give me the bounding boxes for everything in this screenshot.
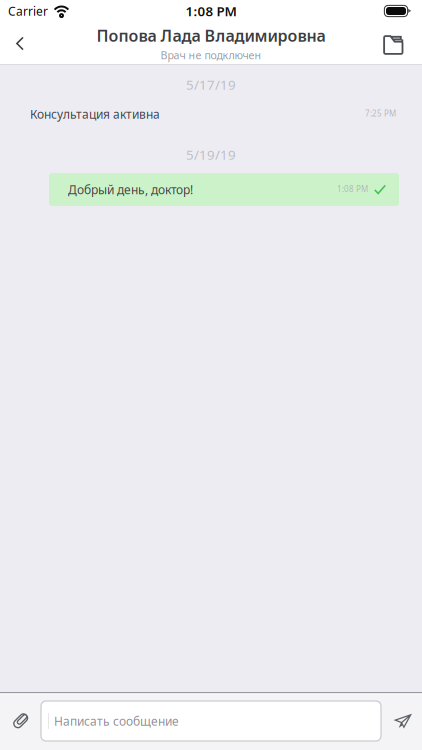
- button[interactable]: Back: [0, 22, 40, 65]
- staticText: 1:08 PM: [337, 184, 368, 194]
- staticText: 1:08 PM: [185, 2, 236, 20]
- button[interactable]: Attach file: [1, 692, 41, 750]
- staticText: Написать сообщение: [54, 713, 179, 729]
- staticText: Попова Лада Владимировна: [96, 25, 325, 46]
- staticText: 7:25 PM: [365, 108, 396, 119]
- staticText: Добрый день, доктор!: [68, 181, 193, 197]
- staticText: Врач не подключен: [160, 48, 261, 62]
- button[interactable]: Documents: [370, 22, 416, 65]
- staticText: Консультация активна: [30, 106, 160, 122]
- button[interactable]: Написать сообщение: [41, 701, 381, 741]
- staticText: Carrier: [8, 3, 48, 19]
- staticText: 5/19/19: [186, 146, 236, 163]
- staticText: 5/17/19: [186, 76, 236, 93]
- button[interactable]: Send: [389, 692, 417, 750]
